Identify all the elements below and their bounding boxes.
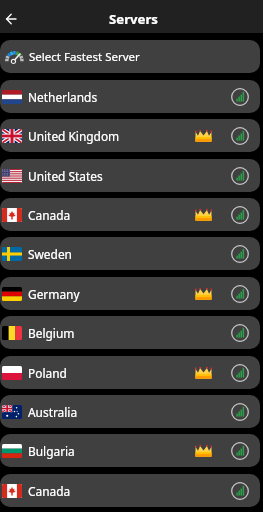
staticText: Sweden [28, 246, 72, 262]
button[interactable]: United States [0, 159, 260, 192]
staticText: United Kingdom [28, 128, 120, 144]
button[interactable]: Bulgaria [0, 434, 260, 467]
button[interactable]: Canada [0, 198, 260, 231]
button[interactable]: United Kingdom [0, 119, 260, 152]
staticText: Poland [28, 365, 67, 381]
button[interactable]: Netherlands [0, 80, 260, 113]
staticText: Select Fastest Server [29, 49, 140, 65]
staticText: Bulgaria [28, 443, 75, 459]
staticText: Netherlands [28, 89, 98, 105]
button[interactable]: Poland [0, 356, 260, 389]
staticText: Belgium [28, 325, 75, 341]
staticText: Canada [28, 207, 71, 223]
button[interactable]: Belgium [0, 316, 260, 349]
staticText: Australia [28, 404, 78, 420]
button[interactable]: Australia [0, 395, 260, 428]
staticText: Germany [28, 286, 80, 302]
staticText: Servers [109, 10, 158, 28]
staticText: United States [28, 168, 103, 184]
button[interactable]: Sweden [0, 237, 260, 270]
staticText: Canada [28, 483, 71, 499]
button[interactable]: Back [0, 6, 24, 32]
button[interactable]: Canada [0, 474, 260, 507]
button[interactable]: Germany [0, 277, 260, 310]
button[interactable]: Select Fastest Server [0, 40, 260, 73]
